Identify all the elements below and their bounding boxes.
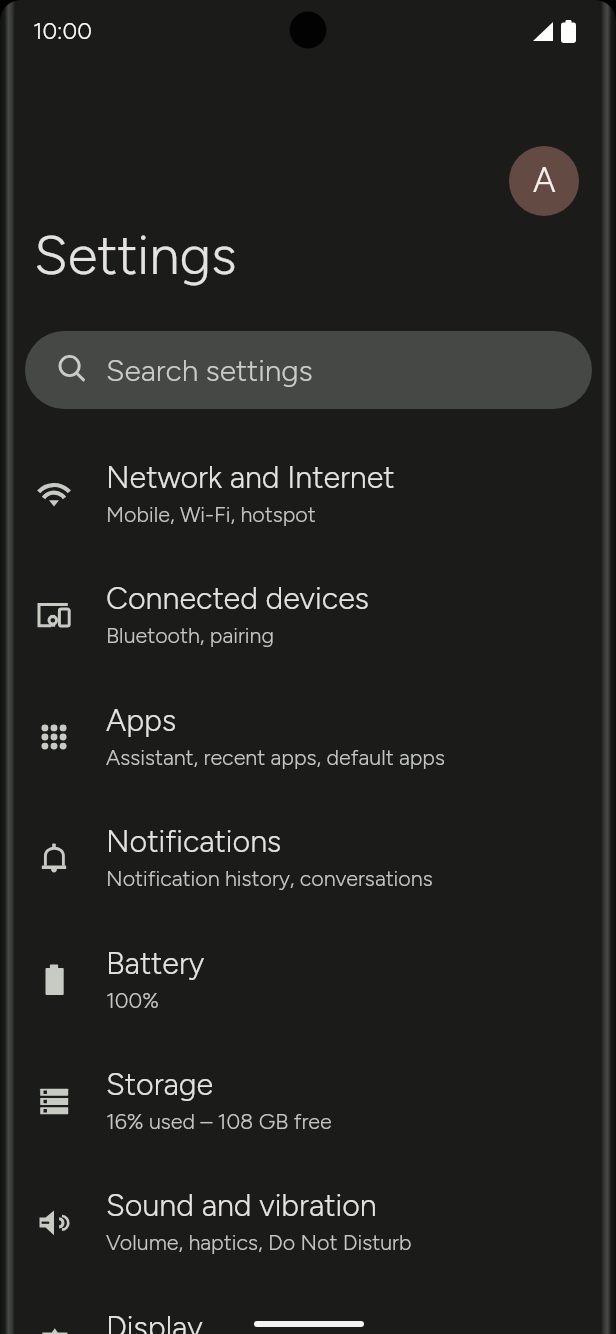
staticText: Connected devices: [106, 580, 369, 617]
staticText: Notifications: [106, 823, 282, 860]
button[interactable]: Display: [14, 1277, 601, 1334]
staticText: 100%: [106, 988, 159, 1014]
staticText: Bluetooth, pairing: [106, 623, 275, 649]
staticText: Sound and vibration: [106, 1187, 377, 1224]
button[interactable]: Apps: [14, 670, 601, 791]
button[interactable]: Battery: [14, 913, 601, 1034]
button[interactable]: Connected devices: [14, 548, 601, 669]
staticText: A: [533, 160, 556, 201]
staticText: Assistant, recent apps, default apps: [106, 745, 446, 771]
button[interactable]: Network and Internet: [14, 427, 601, 548]
button[interactable]: Sound and vibration: [14, 1155, 601, 1276]
staticText: Notification history, conversations: [106, 866, 433, 892]
staticText: Search settings: [106, 352, 313, 388]
button[interactable]: Notifications: [14, 791, 601, 912]
staticText: Storage: [106, 1066, 214, 1103]
staticText: Apps: [106, 702, 177, 739]
staticText: Network and Internet: [106, 459, 395, 496]
staticText: Volume, haptics, Do Not Disturb: [106, 1230, 412, 1256]
staticText: Battery: [106, 945, 205, 982]
button[interactable]: Storage: [14, 1034, 601, 1155]
staticText: Display: [106, 1309, 203, 1334]
button[interactable]: Account: [509, 146, 579, 216]
staticText: Mobile, Wi-Fi, hotspot: [106, 502, 316, 528]
button[interactable]: Search settings: [25, 331, 592, 409]
staticText: 16% used – 108 GB free: [106, 1109, 332, 1135]
staticText: Settings: [34, 222, 237, 287]
staticText: 10:00: [33, 17, 92, 45]
